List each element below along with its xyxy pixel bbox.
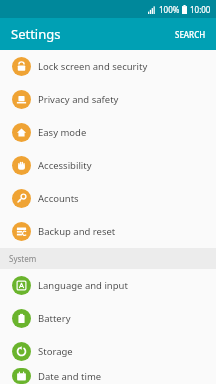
button[interactable]: Easy mode <box>0 116 216 149</box>
staticText: Battery <box>38 312 71 325</box>
button[interactable]: Date and time <box>0 368 216 384</box>
button[interactable]: Battery <box>0 302 216 335</box>
button[interactable]: Lock screen and security <box>0 50 216 83</box>
staticText: Language and input <box>38 279 128 292</box>
button[interactable]: Accessibility <box>0 149 216 182</box>
staticText: Backup and reset <box>38 225 116 238</box>
button[interactable]: Storage <box>0 335 216 368</box>
staticText: Easy mode <box>38 126 87 139</box>
staticText: 10:00 <box>190 4 211 15</box>
staticText: 100% <box>159 4 180 15</box>
staticText: Settings <box>11 25 61 43</box>
staticText: Accounts <box>38 192 79 205</box>
staticText: SEARCH <box>175 29 206 40</box>
button[interactable]: Language and input <box>0 269 216 302</box>
staticText: Date and time <box>38 370 102 383</box>
button[interactable]: Privacy and safety <box>0 83 216 116</box>
button[interactable]: Backup and reset <box>0 215 216 248</box>
button[interactable]: SEARCH <box>165 23 216 46</box>
staticText: Accessibility <box>38 159 92 172</box>
staticText: Privacy and safety <box>38 93 119 106</box>
staticText: Storage <box>38 345 73 358</box>
staticText: System <box>9 253 37 264</box>
button[interactable]: Accounts <box>0 182 216 215</box>
staticText: Lock screen and security <box>38 60 148 73</box>
